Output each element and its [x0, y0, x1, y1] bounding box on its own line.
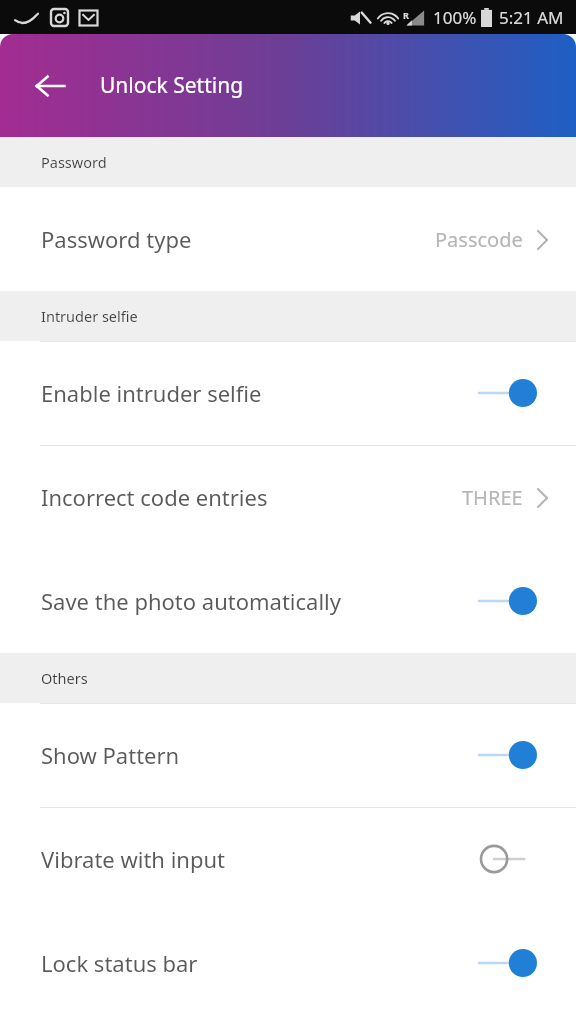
button[interactable]: Enable intruder selfie	[0, 341, 576, 445]
staticText: 5:21 AM	[499, 6, 564, 29]
staticText: Passcode	[435, 226, 523, 253]
staticText: Others	[41, 668, 88, 688]
button[interactable]: Vibrate with input	[0, 807, 576, 911]
button[interactable]: Show Pattern	[476, 733, 540, 777]
button[interactable]: Back	[24, 60, 76, 112]
button[interactable]: Show Pattern	[0, 703, 576, 807]
staticText: Incorrect code entries	[41, 482, 268, 512]
staticText: Enable intruder selfie	[41, 378, 262, 408]
staticText: Unlock Setting	[100, 71, 244, 100]
staticText: Lock status bar	[41, 948, 198, 978]
staticText: Intruder selfie	[41, 306, 138, 326]
button[interactable]: Password type	[0, 187, 576, 291]
staticText: 100%	[433, 6, 477, 29]
staticText: THREE	[462, 484, 523, 511]
button[interactable]: Save the photo automatically	[0, 549, 576, 653]
staticText: Password	[41, 152, 107, 172]
staticText: Vibrate with input	[41, 844, 226, 874]
button[interactable]: Incorrect code entries	[0, 445, 576, 549]
staticText: R	[403, 9, 409, 21]
button[interactable]: Enable intruder selfie	[476, 371, 540, 415]
staticText: Save the photo automatically	[41, 586, 341, 616]
staticText: Password type	[41, 224, 192, 254]
button[interactable]: Save the photo automatically	[476, 579, 540, 623]
button[interactable]: Lock status bar	[476, 941, 540, 985]
button[interactable]: Vibrate with input	[476, 837, 540, 881]
staticText: Show Pattern	[41, 740, 180, 770]
button[interactable]: Lock status bar	[0, 911, 576, 1015]
